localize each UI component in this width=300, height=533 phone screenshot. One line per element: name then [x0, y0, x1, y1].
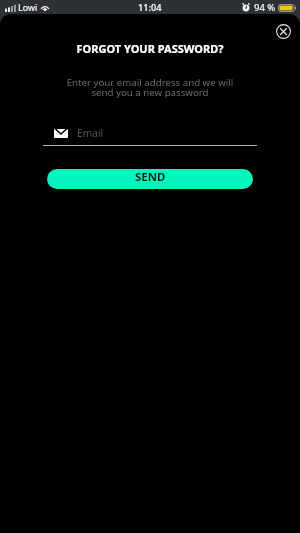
staticText: Lowi	[18, 1, 38, 13]
staticText: SEND	[135, 169, 166, 185]
staticText: 94 %	[254, 1, 276, 14]
staticText: Enter your email address and we will sen…	[0, 76, 300, 98]
button[interactable]: Email	[43, 121, 257, 145]
button[interactable]: SEND	[47, 169, 253, 189]
staticText: 11:04	[138, 1, 162, 14]
staticText: Email	[77, 126, 104, 140]
button[interactable]: Close	[273, 21, 293, 41]
staticText: FORGOT YOUR PASSWORD?	[0, 41, 300, 56]
